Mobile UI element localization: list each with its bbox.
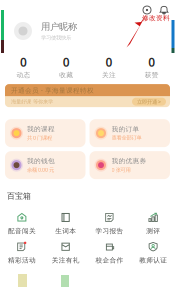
staticText: 配音闯关 — [8, 227, 36, 235]
staticText: 获赞 — [145, 71, 159, 79]
staticText: 查看全部订单 — [111, 134, 141, 141]
button[interactable]: 学习报告 — [87, 212, 131, 235]
staticText: 0 — [148, 54, 155, 70]
staticText: 百宝箱 — [7, 191, 31, 201]
staticText: 0 — [63, 54, 70, 70]
button[interactable]: 0 — [130, 53, 173, 80]
staticText: 我的课程 — [27, 125, 55, 133]
button[interactable]: 设置 — [142, 5, 152, 15]
staticText: 学习报告 — [95, 227, 123, 235]
button[interactable]: 0 — [87, 53, 130, 80]
button[interactable]: 开通会员 · 享海量课程特权 — [5, 84, 170, 107]
button[interactable]: 测评 — [131, 212, 175, 235]
staticText: 学习使我快乐 — [41, 34, 71, 41]
button[interactable]: 校企合作 — [87, 241, 131, 264]
button[interactable]: 0 — [45, 53, 88, 80]
button[interactable]: 我的钱包 — [5, 151, 85, 179]
staticText: 开通会员 · 享海量课程特权 — [11, 86, 94, 95]
staticText: 精彩活动 — [8, 256, 36, 264]
staticText: 0 — [105, 54, 112, 70]
staticText: 教师认证 — [139, 256, 167, 264]
staticText: 海量好课 等你来学 — [11, 98, 53, 105]
staticText: 立即开通 > — [137, 98, 161, 105]
staticText: 用户昵称 — [41, 21, 77, 32]
staticText: 0 — [20, 54, 27, 70]
button[interactable]: 我的课程 — [5, 119, 85, 147]
staticText: 校企合作 — [95, 256, 123, 264]
staticText: 我的订单 — [111, 125, 139, 133]
staticText: 生词本 — [55, 227, 76, 235]
staticText: 关注 — [102, 71, 116, 79]
staticText: 我的优惠券 — [111, 157, 146, 165]
staticText: 0 张可用 — [111, 166, 130, 173]
button[interactable]: 0 — [2, 53, 45, 80]
staticText: 共 0 门课程 — [27, 134, 52, 141]
staticText: 测评 — [146, 227, 160, 235]
staticText: 我的钱包 — [27, 157, 55, 165]
staticText: 收藏 — [59, 71, 73, 79]
staticText: 余额 0.00 元 — [27, 166, 54, 173]
staticText: 关注有礼 — [52, 256, 80, 264]
staticText: 动态 — [16, 71, 30, 79]
button[interactable]: 我的优惠券 — [89, 151, 170, 179]
button[interactable]: 配音闯关 — [0, 212, 44, 235]
button[interactable]: 消息通知 — [159, 5, 169, 15]
button[interactable]: 精彩活动 — [0, 241, 44, 264]
button[interactable]: 教师认证 — [131, 241, 175, 264]
button[interactable]: 我的订单 — [89, 119, 170, 147]
button[interactable]: 关注有礼 — [44, 241, 88, 264]
button[interactable]: 生词本 — [44, 212, 88, 235]
staticText: 修改资料 — [142, 14, 170, 22]
